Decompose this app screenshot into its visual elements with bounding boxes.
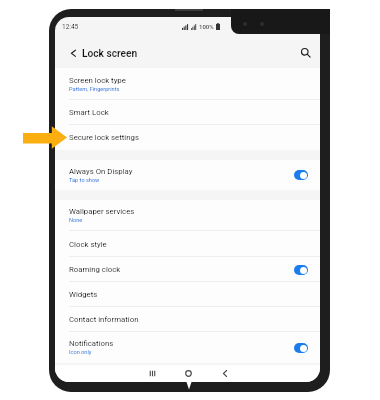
staticText: Wallpaper services bbox=[69, 207, 135, 216]
button[interactable]: Notifications bbox=[55, 332, 320, 363]
button[interactable]: Wallpaper services bbox=[55, 200, 320, 231]
button[interactable]: Secure lock settings bbox=[55, 125, 320, 150]
staticText: 100% bbox=[199, 23, 214, 30]
staticText: Notifications bbox=[69, 339, 114, 348]
button[interactable]: Screen lock type bbox=[55, 68, 320, 100]
staticText: Smart Lock bbox=[69, 108, 109, 117]
button[interactable]: Widgets bbox=[55, 282, 320, 307]
button[interactable]: Notifications toggle bbox=[294, 343, 308, 353]
staticText: Roaming clock bbox=[69, 265, 121, 274]
button[interactable]: Home bbox=[171, 365, 205, 382]
staticText: Screen lock type bbox=[69, 76, 126, 85]
button[interactable]: Search bbox=[298, 45, 312, 59]
button[interactable]: Contact information bbox=[55, 307, 320, 332]
staticText: Pattern, Fingerprints bbox=[69, 86, 120, 93]
button[interactable]: Clock style bbox=[55, 231, 320, 257]
staticText: Clock style bbox=[69, 240, 107, 249]
staticText: Secure lock settings bbox=[69, 133, 139, 142]
staticText: Widgets bbox=[69, 290, 98, 299]
button[interactable]: Always On Display bbox=[55, 160, 320, 190]
button[interactable]: Roaming clock toggle bbox=[294, 265, 308, 275]
staticText: 12:45 bbox=[62, 23, 79, 31]
staticText: Lock screen bbox=[82, 48, 138, 60]
staticText: Icon only bbox=[69, 349, 92, 356]
staticText: None bbox=[69, 217, 83, 224]
button[interactable]: Roaming clock bbox=[55, 257, 320, 282]
button[interactable]: Recent apps bbox=[135, 365, 169, 382]
staticText: Always On Display bbox=[69, 167, 133, 176]
staticText: Contact information bbox=[69, 315, 139, 324]
button[interactable]: Back bbox=[207, 365, 241, 382]
button[interactable]: Smart Lock bbox=[55, 100, 320, 125]
button[interactable]: Navigate up bbox=[66, 46, 79, 59]
button[interactable]: Always On Display toggle bbox=[294, 170, 308, 180]
staticText: Tap to show bbox=[69, 177, 100, 184]
